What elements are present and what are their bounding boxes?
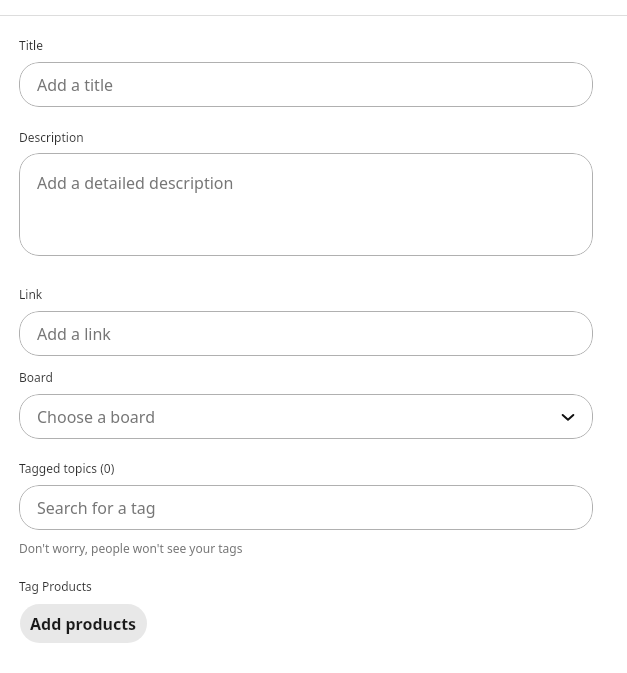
staticText: Add products xyxy=(30,613,137,635)
staticText: Don't worry, people won't see your tags xyxy=(19,540,243,556)
staticText: Search for a tag xyxy=(37,497,156,519)
button[interactable]: Add a title xyxy=(19,62,593,107)
button[interactable]: Choose a board xyxy=(19,394,593,439)
other: Choose a board xyxy=(557,406,579,428)
staticText: Link xyxy=(19,286,43,302)
staticText: Add a title xyxy=(37,74,114,96)
button[interactable]: Add a link xyxy=(19,311,593,356)
button[interactable]: Search for a tag xyxy=(19,485,593,530)
button[interactable]: Add products xyxy=(20,604,147,643)
staticText: Add a detailed description xyxy=(37,172,234,194)
staticText: Tag Products xyxy=(19,578,92,594)
staticText: Choose a board xyxy=(37,406,155,428)
staticText: Description xyxy=(19,129,84,145)
staticText: Board xyxy=(19,369,53,385)
staticText: Tagged topics (0) xyxy=(19,460,115,476)
staticText: Title xyxy=(19,37,43,53)
button[interactable]: Add a detailed description xyxy=(19,153,593,256)
staticText: Add a link xyxy=(37,323,111,345)
